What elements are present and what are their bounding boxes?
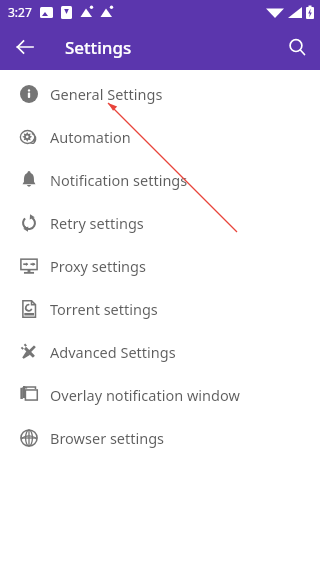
button[interactable]: Retry settings <box>0 201 320 244</box>
staticText: Proxy settings <box>50 256 146 276</box>
staticText: Advanced Settings <box>50 342 176 362</box>
staticText: Settings <box>65 36 132 59</box>
button[interactable]: Search <box>279 29 315 65</box>
button[interactable]: General Settings <box>0 72 320 115</box>
staticText: Browser settings <box>50 428 165 448</box>
staticText: 3:27 <box>8 4 32 20</box>
button[interactable]: Torrent settings <box>0 287 320 330</box>
staticText: Automation <box>50 127 131 147</box>
button[interactable]: Overlay notification window <box>0 373 320 416</box>
button[interactable]: Notification settings <box>0 158 320 201</box>
button[interactable]: Back <box>7 29 43 65</box>
staticText: Torrent settings <box>50 299 158 319</box>
staticText: Notification settings <box>50 170 188 190</box>
button[interactable]: Proxy settings <box>0 244 320 287</box>
button[interactable]: Automation <box>0 115 320 158</box>
button[interactable]: Advanced Settings <box>0 330 320 373</box>
button[interactable]: Browser settings <box>0 416 320 459</box>
staticText: Retry settings <box>50 213 144 233</box>
staticText: General Settings <box>50 84 163 104</box>
staticText: Overlay notification window <box>50 385 240 405</box>
